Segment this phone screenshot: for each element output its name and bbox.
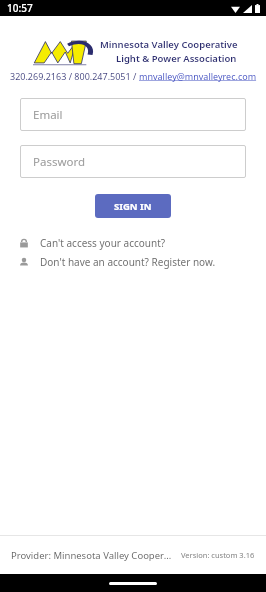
staticText: Version: custom 3.16 (181, 550, 255, 560)
staticText: Password (33, 154, 86, 170)
staticText: 320.269.2163 / 800.247.5051 / (10, 70, 139, 82)
button[interactable]: Lock (18, 236, 248, 250)
staticText: Provider: Minnesota Valley Cooperative..… (11, 549, 173, 562)
staticText: Light & Power Association (116, 52, 237, 65)
button[interactable]: mnvalley@mnvalleyrec.com (139, 70, 257, 82)
staticText: Minnesota Valley Cooperative (100, 38, 238, 51)
button[interactable]: SIGN IN (95, 194, 171, 218)
button[interactable]: Email (20, 98, 246, 131)
staticText: 10:57 (7, 1, 33, 15)
staticText: Email (33, 107, 63, 123)
other: Account (18, 256, 30, 268)
staticText: Can't access your account? (40, 236, 166, 250)
staticText: Don't have an account? Register now. (40, 255, 216, 269)
button[interactable]: Account (18, 255, 248, 269)
staticText: SIGN IN (114, 200, 152, 213)
button[interactable]: Password (20, 145, 246, 178)
other: Lock (18, 237, 30, 249)
